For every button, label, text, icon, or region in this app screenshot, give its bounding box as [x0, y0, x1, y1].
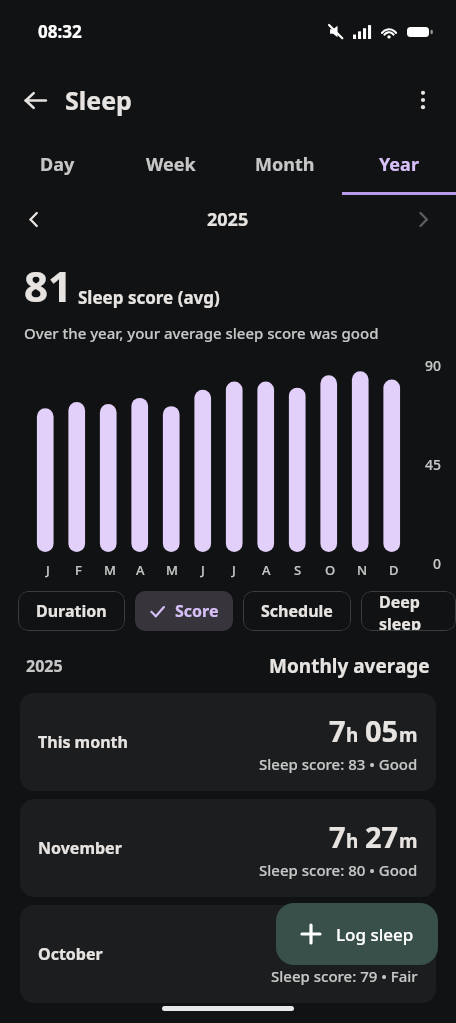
staticText: N	[357, 561, 368, 579]
staticText: October	[38, 943, 103, 965]
button[interactable]: Back	[12, 77, 58, 123]
button[interactable]: Year	[342, 138, 456, 191]
button[interactable]: Schedule	[243, 591, 351, 631]
staticText: Sleep score: 83 • Good	[259, 754, 418, 774]
staticText: h	[346, 934, 359, 960]
button[interactable]: Day	[0, 138, 114, 191]
staticText: November	[38, 837, 122, 859]
staticText: Week	[146, 152, 196, 177]
staticText: Day	[40, 152, 75, 177]
staticText: Score	[175, 600, 219, 622]
staticText: S	[294, 561, 302, 579]
staticText: 81	[24, 257, 73, 314]
staticText: h	[346, 722, 359, 748]
staticText: 0	[433, 554, 442, 573]
staticText: 7	[329, 923, 346, 962]
staticText: Duration	[36, 600, 107, 622]
button[interactable]: Score	[135, 591, 233, 631]
button[interactable]: Month	[228, 138, 342, 191]
staticText: 05	[365, 711, 399, 750]
staticText: J	[232, 561, 236, 579]
button[interactable]: Log sleep	[276, 903, 438, 965]
staticText: A	[262, 561, 271, 579]
button[interactable]: This month	[20, 693, 436, 791]
staticText: m	[399, 828, 418, 854]
staticText: M	[104, 561, 116, 579]
staticText: Sleep score: 79 • Fair	[271, 966, 418, 986]
staticText: Sleep score: 80 • Good	[259, 860, 418, 880]
staticText: F	[75, 561, 82, 579]
button[interactable]: Duration	[18, 591, 125, 631]
staticText: Year	[379, 152, 419, 177]
staticText: Log sleep	[336, 923, 414, 946]
staticText: Over the year, your average sleep score …	[24, 323, 379, 343]
staticText: Monthly average	[269, 653, 430, 679]
button[interactable]: Week	[114, 138, 228, 191]
button[interactable]: November	[20, 799, 436, 897]
staticText: 08:32	[38, 20, 82, 43]
staticText: J	[46, 561, 50, 579]
button[interactable]: More options	[400, 77, 446, 123]
staticText: m	[399, 934, 418, 960]
staticText: m	[399, 722, 418, 748]
staticText: 45	[425, 455, 442, 474]
staticText: Sleep score (avg)	[78, 286, 220, 309]
staticText: 7	[329, 711, 346, 750]
button[interactable]: Deep sleep	[361, 591, 456, 631]
staticText: M	[166, 561, 178, 579]
staticText: 29	[365, 923, 399, 962]
staticText: J	[201, 561, 205, 579]
staticText: h	[346, 828, 359, 854]
staticText: D	[389, 561, 399, 579]
staticText: 7	[329, 817, 346, 856]
staticText: Sleep	[65, 83, 132, 117]
staticText: 2025	[26, 655, 63, 677]
button[interactable]: October	[20, 905, 436, 1003]
staticText: 2025	[207, 207, 249, 232]
button[interactable]: Previous year	[14, 200, 52, 238]
staticText: 27	[365, 817, 399, 856]
staticText: O	[325, 561, 336, 579]
staticText: A	[136, 561, 145, 579]
staticText: Deep sleep	[379, 591, 438, 631]
staticText: Month	[255, 152, 315, 177]
staticText: Schedule	[261, 600, 333, 622]
button[interactable]: Next year	[404, 200, 442, 238]
staticText: 90	[425, 356, 442, 375]
staticText: This month	[38, 731, 128, 753]
